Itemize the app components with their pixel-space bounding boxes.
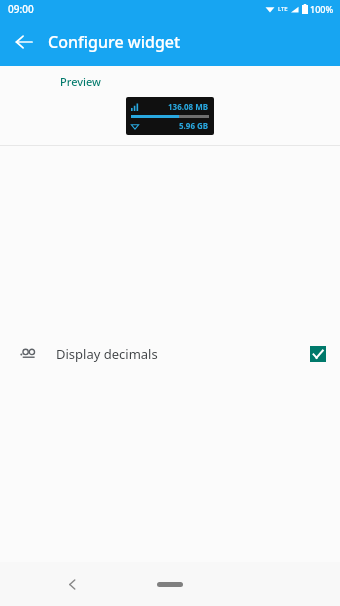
staticText: Preview [60,74,101,89]
staticText: 136.08 MB [168,101,209,112]
staticText: Display decimals [56,345,158,363]
button[interactable]: Checked [303,339,333,369]
button[interactable]: Back [0,18,48,66]
staticText: Configure widget [48,31,181,53]
staticText: LTE [278,5,288,13]
staticText: 09:00 [8,2,34,16]
button[interactable]: Home [146,574,194,594]
button[interactable]: Back [58,570,86,598]
staticText: 100% [310,3,334,15]
button[interactable]: Display decimals [0,146,340,562]
button[interactable]: 136.08 MB [126,97,214,135]
staticText: 5.96 GB [179,120,209,131]
